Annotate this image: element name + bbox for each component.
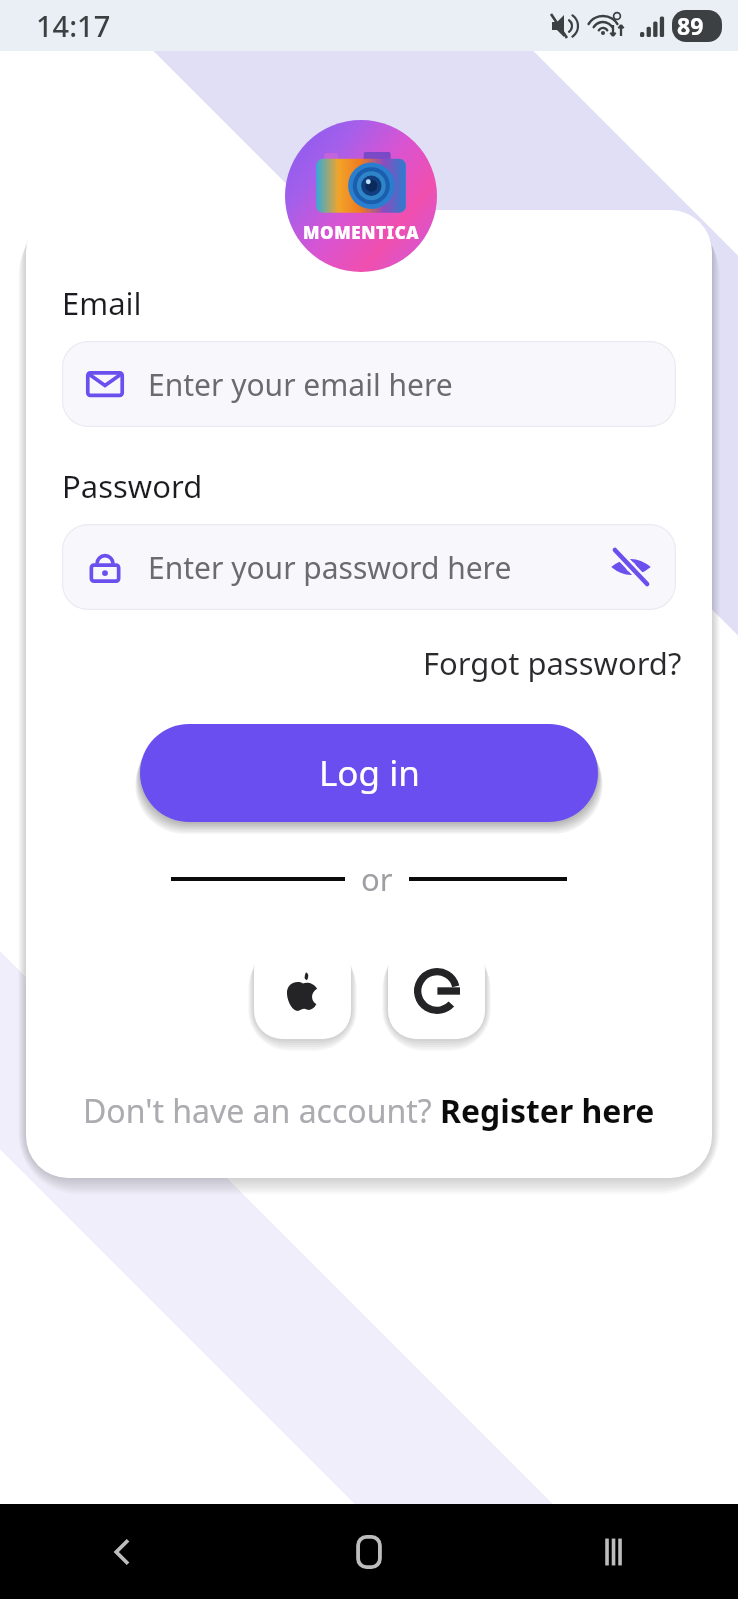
button[interactable]: Forgot password? bbox=[415, 636, 690, 690]
button[interactable]: Back bbox=[0, 1504, 246, 1599]
staticText: Don't have an account? bbox=[83, 1089, 440, 1133]
button[interactable]: Register here bbox=[440, 1089, 655, 1133]
staticText: Register here bbox=[440, 1089, 655, 1133]
staticText: Forgot password? bbox=[423, 642, 682, 684]
button[interactable]: Sign in with Google bbox=[388, 942, 485, 1039]
staticText: Enter your password here bbox=[148, 547, 512, 588]
staticText: or bbox=[361, 858, 393, 900]
button[interactable]: Toggle password visibility bbox=[602, 538, 660, 596]
staticText: MOMENTICA bbox=[303, 221, 420, 244]
staticText: Enter your email here bbox=[148, 364, 453, 405]
button[interactable]: Recent apps bbox=[492, 1504, 738, 1599]
button[interactable]: Enter your email here bbox=[62, 341, 676, 427]
staticText: Password bbox=[62, 465, 203, 507]
staticText: Email bbox=[62, 282, 142, 324]
button[interactable]: Log in bbox=[140, 724, 598, 822]
button[interactable]: Enter your password here bbox=[62, 524, 676, 610]
button[interactable]: Home bbox=[246, 1504, 492, 1599]
button[interactable]: Sign in with Apple bbox=[254, 942, 351, 1039]
staticText: Log in bbox=[319, 749, 420, 797]
staticText: 14:17 bbox=[36, 6, 111, 45]
staticText: 89 bbox=[677, 10, 704, 41]
